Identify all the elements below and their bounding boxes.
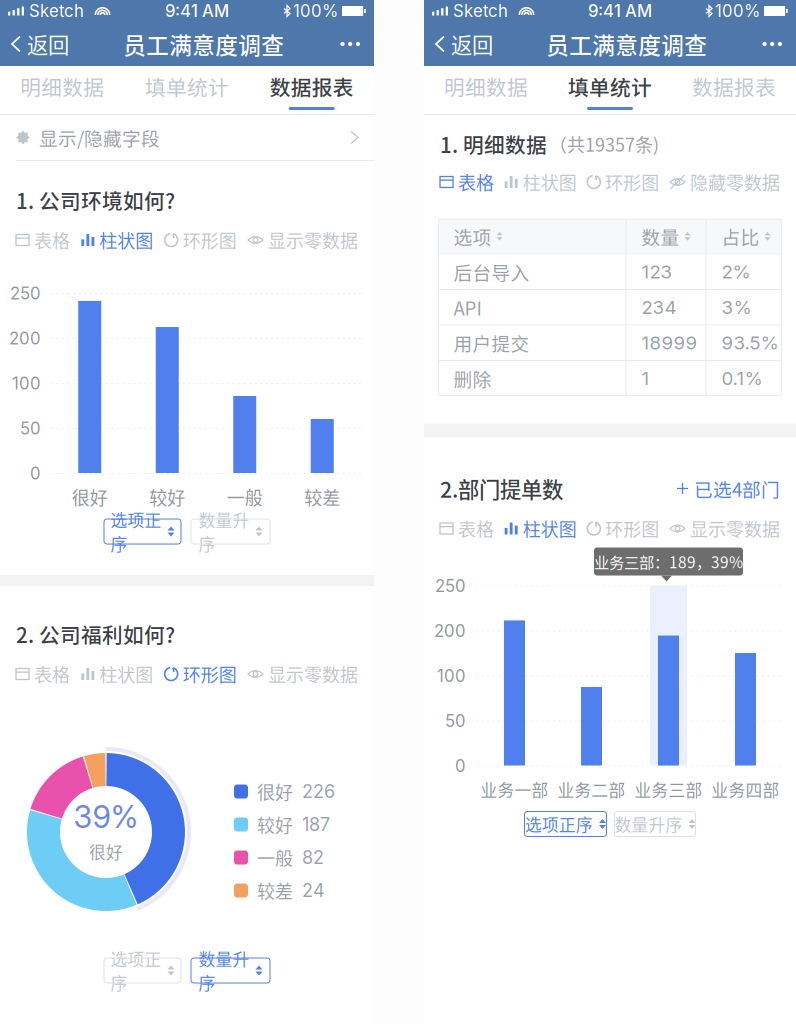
staticText: 选项正序 — [525, 812, 593, 836]
staticText: 50 — [445, 711, 466, 731]
staticText: 9:41 AM — [588, 1, 652, 21]
button[interactable]: 环形图 — [165, 225, 237, 255]
button[interactable]: 已选4部门 — [677, 473, 780, 503]
staticText: 0.1% — [721, 367, 762, 390]
button[interactable]: 填单统计 — [548, 66, 672, 114]
button[interactable]: 环形图 — [587, 167, 659, 197]
staticText: 业务二部 — [557, 777, 625, 801]
staticText: 员工满意度调查 — [546, 28, 707, 60]
staticText: 很好 — [257, 778, 293, 805]
staticText: 123 — [641, 260, 672, 283]
staticText: 显示零数据 — [268, 661, 358, 687]
button[interactable]: 表格 — [440, 513, 494, 543]
staticText: 24 — [302, 880, 325, 901]
button[interactable]: 柱状图 — [81, 659, 153, 689]
staticText: 1. 明细数据 — [440, 129, 547, 159]
staticText: 100 — [12, 373, 41, 394]
staticText: 柱状图 — [99, 227, 153, 253]
staticText: 一般 — [227, 484, 263, 510]
button[interactable]: 数量升序 — [614, 811, 695, 836]
button[interactable]: 显示零数据 — [248, 659, 358, 689]
button[interactable]: 柱状图 — [81, 225, 153, 255]
staticText: （共19357条) — [549, 131, 659, 157]
button[interactable]: 数据报表 — [672, 66, 796, 114]
staticText: 数量升序 — [614, 812, 682, 836]
staticText: 显示/隐藏字段 — [39, 124, 160, 151]
button[interactable]: 数量升序 — [191, 519, 270, 544]
staticText: 100% — [715, 1, 760, 21]
staticText: 明细数据 — [444, 71, 528, 101]
button[interactable]: 返回 — [0, 22, 81, 66]
staticText: 0 — [30, 463, 41, 484]
staticText: 柱状图 — [523, 515, 577, 542]
staticText: 2.部门提单数 — [440, 473, 563, 504]
staticText: 返回 — [451, 29, 493, 59]
staticText: 187 — [302, 814, 330, 835]
button[interactable]: 显示/隐藏字段 — [0, 115, 374, 160]
staticText: 数据报表 — [270, 71, 354, 101]
staticText: 2% — [721, 260, 750, 283]
button[interactable]: 明细数据 — [0, 66, 125, 114]
staticText: 2. 公司福利如何? — [16, 619, 175, 649]
staticText: API — [453, 294, 481, 321]
staticText: 业务四部 — [711, 777, 779, 801]
staticText: 234 — [641, 296, 676, 319]
button[interactable]: 填单统计 — [125, 66, 249, 114]
button[interactable]: 显示零数据 — [670, 513, 780, 543]
staticText: 返回 — [27, 29, 69, 59]
staticText: 表格 — [458, 169, 494, 195]
staticText: 200 — [9, 328, 41, 349]
button[interactable]: 柱状图 — [505, 167, 577, 197]
staticText: 39% — [73, 798, 138, 835]
button[interactable]: 返回 — [424, 22, 505, 66]
button[interactable]: 选项正序 — [524, 811, 606, 836]
staticText: 较差 — [257, 877, 293, 904]
staticText: 200 — [434, 621, 466, 641]
button[interactable]: 柱状图 — [505, 513, 577, 543]
staticText: 很好 — [72, 484, 108, 510]
staticText: 环形图 — [605, 515, 659, 542]
staticText: 数量升序 — [198, 946, 249, 995]
button[interactable]: 隐藏零数据 — [670, 167, 780, 197]
staticText: 1. 公司环境如何? — [16, 185, 175, 215]
button[interactable]: 显示零数据 — [248, 225, 358, 255]
staticText: Sketch — [29, 1, 84, 21]
staticText: 数量升序 — [198, 507, 249, 556]
button[interactable]: 更多 — [748, 22, 796, 66]
staticText: 表格 — [458, 515, 494, 542]
staticText: 占比 — [721, 223, 759, 250]
button[interactable]: 明细数据 — [424, 66, 548, 114]
button[interactable]: 选项正序 — [104, 519, 181, 544]
staticText: 删除 — [453, 365, 491, 392]
staticText: 较差 — [304, 484, 340, 510]
button[interactable]: 数据报表 — [249, 66, 374, 114]
staticText: 选项正序 — [110, 507, 161, 556]
button[interactable]: 表格 — [16, 225, 70, 255]
staticText: 很好 — [89, 839, 123, 864]
button[interactable]: 选项正序 — [104, 958, 181, 983]
button[interactable]: 表格 — [440, 167, 494, 197]
staticText: 93.5% — [721, 331, 778, 354]
staticText: 18999 — [641, 331, 697, 354]
staticText: 0 — [455, 756, 466, 776]
staticText: 业务三部 — [634, 777, 702, 801]
staticText: 环形图 — [183, 661, 237, 687]
staticText: 250 — [435, 576, 466, 596]
button[interactable]: 环形图 — [165, 659, 237, 689]
button[interactable]: 更多 — [326, 22, 374, 66]
staticText: 较好 — [149, 484, 185, 510]
staticText: 柱状图 — [523, 169, 577, 195]
button[interactable]: 数量升序 — [191, 958, 270, 983]
button[interactable]: 表格 — [16, 659, 70, 689]
staticText: 226 — [302, 781, 335, 802]
staticText: 选项正序 — [110, 946, 161, 995]
staticText: 后台导入 — [453, 258, 529, 285]
staticText: 柱状图 — [99, 661, 153, 687]
staticText: 82 — [302, 847, 324, 868]
button[interactable]: 环形图 — [587, 513, 659, 543]
staticText: 业务三部：189，39% — [594, 550, 743, 573]
staticText: 用户提交 — [453, 329, 529, 356]
staticText: 员工满意度调查 — [123, 28, 284, 60]
staticText: 选项 — [453, 223, 491, 250]
staticText: 显示零数据 — [268, 227, 358, 253]
